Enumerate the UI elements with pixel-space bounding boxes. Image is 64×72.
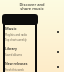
staticText: Playlists and radio	[5, 33, 28, 37]
button[interactable]: Music	[5, 26, 59, 42]
button[interactable]: Library	[5, 46, 59, 57]
staticText: Music	[5, 26, 17, 31]
button[interactable]: New releases	[5, 61, 59, 72]
staticText: Discover and share music	[19, 2, 45, 12]
staticText: Fresh this week	[5, 68, 24, 72]
staticText: Top charts weekly	[5, 38, 27, 42]
staticText: Library	[5, 46, 17, 51]
staticText: Saved albums	[5, 53, 22, 57]
button[interactable]	[2, 14, 38, 25]
staticText: New releases	[5, 61, 28, 66]
